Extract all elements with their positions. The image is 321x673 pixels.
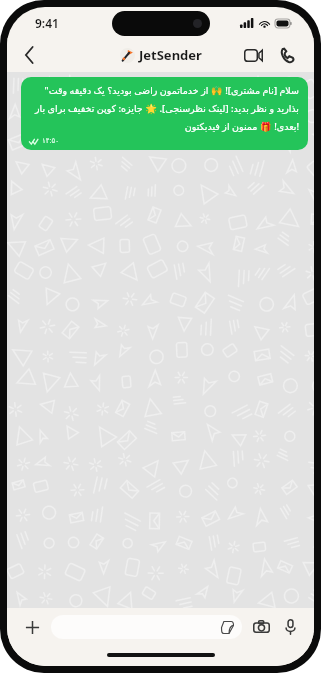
button[interactable]: Video call <box>238 40 268 70</box>
staticText: "سلام [نام مشتری]! 🙌 از خدماتمون راضی بو… <box>29 84 299 133</box>
button[interactable]: "سلام [نام مشتری]! 🙌 از خدماتمون راضی بو… <box>21 77 308 150</box>
button[interactable]: Stickers <box>218 618 236 636</box>
button[interactable]: JetSender <box>120 46 202 64</box>
staticText: 9:41 <box>35 15 59 31</box>
button[interactable]: Voice call <box>272 40 302 70</box>
button[interactable]: Attach <box>19 614 45 640</box>
button[interactable]: Voice message <box>278 615 302 639</box>
staticText: JetSender <box>139 46 202 64</box>
button[interactable]: Stickers <box>51 615 242 639</box>
button[interactable]: Back <box>13 39 45 71</box>
button[interactable]: Camera <box>249 615 273 639</box>
staticText: ۱۴:۵۰ <box>42 136 59 146</box>
